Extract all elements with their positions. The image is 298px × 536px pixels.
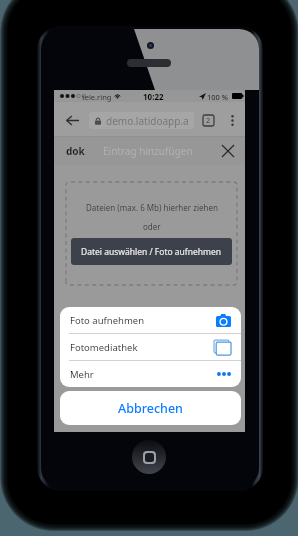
button[interactable]: demo.latidoapp.a bbox=[89, 112, 194, 129]
staticText: Fotomediathek bbox=[70, 341, 138, 354]
button[interactable]: Close bbox=[218, 141, 238, 161]
staticText: Mehr bbox=[70, 368, 94, 381]
staticText: 10:22 bbox=[143, 91, 164, 102]
button[interactable]: Back bbox=[62, 110, 82, 130]
staticText: demo.latidoapp.a bbox=[106, 114, 189, 128]
button[interactable]: Tabs bbox=[198, 112, 218, 129]
button[interactable]: More options bbox=[223, 110, 241, 130]
staticText: Dateien (max. 6 Mb) hierher ziehen bbox=[86, 202, 218, 213]
staticText: oder bbox=[143, 221, 161, 232]
button[interactable]: Foto aufnehmen bbox=[60, 307, 241, 333]
button[interactable]: Fotomediathek bbox=[60, 334, 241, 360]
button[interactable]: Mehr bbox=[60, 361, 241, 387]
staticText: Abbrechen bbox=[118, 400, 183, 417]
staticText: dok bbox=[66, 144, 85, 158]
button[interactable]: Datei auswählen / Foto aufnehmen bbox=[71, 238, 232, 265]
button[interactable]: Abbrechen bbox=[60, 391, 241, 425]
staticText: Foto aufnehmen bbox=[70, 314, 145, 327]
staticText: Eintrag hinzufügen bbox=[103, 144, 193, 158]
staticText: Datei auswählen / Foto aufnehmen bbox=[81, 246, 222, 258]
staticText: 2 bbox=[206, 116, 211, 126]
staticText: tele.ring bbox=[82, 92, 112, 102]
staticText: 100 % bbox=[207, 92, 229, 102]
